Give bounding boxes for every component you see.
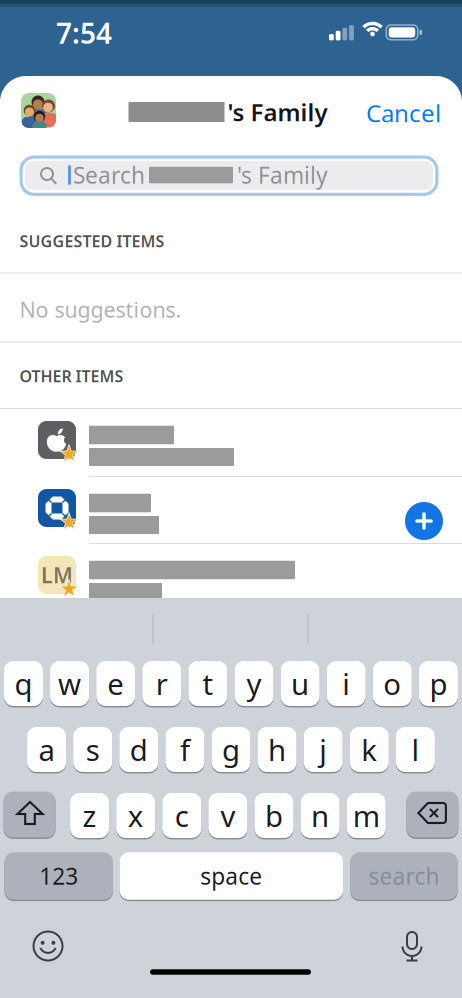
staticText: t: [202, 664, 213, 703]
staticText: i: [342, 664, 350, 703]
staticText: g: [222, 730, 240, 769]
button[interactable]: [0, 408, 462, 475]
button[interactable]: j: [304, 726, 343, 773]
button[interactable]: i: [327, 660, 366, 707]
staticText: 123: [39, 861, 78, 891]
button[interactable]: c: [162, 792, 201, 839]
button[interactable]: Add: [405, 502, 443, 540]
staticText: space: [200, 861, 262, 891]
button[interactable]: q: [4, 660, 43, 707]
button[interactable]: u: [281, 660, 320, 707]
staticText: s: [86, 730, 100, 769]
button[interactable]: Dictation: [396, 930, 428, 962]
button[interactable]: [0, 476, 462, 543]
button[interactable]: Delete: [406, 790, 458, 838]
button[interactable]: o: [373, 660, 412, 707]
button[interactable]: a: [27, 726, 66, 773]
button[interactable]: x: [116, 792, 155, 839]
staticText: p: [429, 664, 447, 703]
button[interactable]: s: [73, 726, 112, 773]
button[interactable]: f: [165, 726, 204, 773]
button[interactable]: y: [234, 660, 273, 707]
staticText: y: [246, 664, 261, 703]
staticText: n: [311, 796, 329, 835]
button[interactable]: v: [208, 792, 247, 839]
button[interactable]: z: [70, 792, 109, 839]
staticText: h: [268, 730, 286, 769]
button[interactable]: g: [211, 726, 250, 773]
staticText: 's Family: [237, 160, 328, 190]
staticText: OTHER ITEMS: [19, 365, 123, 387]
staticText: b: [265, 796, 283, 835]
button[interactable]: b: [254, 792, 293, 839]
staticText: c: [175, 796, 189, 835]
button[interactable]: d: [119, 726, 158, 773]
button[interactable]: LM: [0, 543, 462, 610]
staticText: d: [130, 730, 148, 769]
button[interactable]: Family: [21, 93, 56, 128]
button[interactable]: Emoji: [32, 930, 64, 962]
staticText: v: [220, 796, 235, 835]
button[interactable]: e: [96, 660, 135, 707]
button[interactable]: r: [142, 660, 181, 707]
button[interactable]: w: [50, 660, 89, 707]
staticText: Cancel: [366, 97, 441, 129]
button[interactable]: search: [350, 851, 458, 901]
staticText: LM: [41, 561, 73, 589]
button[interactable]: Shift: [4, 790, 56, 838]
button[interactable]: h: [258, 726, 297, 773]
staticText: SUGGESTED ITEMS: [19, 230, 164, 252]
staticText: search: [368, 861, 439, 891]
staticText: o: [383, 664, 401, 703]
staticText: Search: [73, 160, 145, 190]
button[interactable]: Search: [19, 154, 443, 198]
staticText: x: [128, 796, 144, 835]
button[interactable]: m: [347, 792, 386, 839]
button[interactable]: l: [396, 726, 435, 773]
staticText: l: [411, 730, 419, 769]
staticText: z: [83, 796, 97, 835]
staticText: f: [180, 730, 190, 769]
button[interactable]: n: [301, 792, 340, 839]
staticText: w: [58, 664, 81, 703]
staticText: m: [353, 796, 380, 835]
staticText: No suggestions.: [19, 295, 181, 324]
staticText: q: [14, 664, 32, 703]
button[interactable]: 123: [4, 851, 113, 901]
button[interactable]: t: [188, 660, 227, 707]
button[interactable]: space: [120, 851, 343, 901]
staticText: r: [156, 664, 168, 703]
staticText: u: [291, 664, 309, 703]
button[interactable]: k: [350, 726, 389, 773]
staticText: a: [39, 730, 55, 769]
button[interactable]: Cancel: [0, 97, 462, 129]
button[interactable]: p: [419, 660, 458, 707]
staticText: k: [361, 730, 377, 769]
staticText: j: [319, 730, 327, 769]
staticText: e: [107, 664, 124, 703]
staticText: 7:54: [56, 14, 112, 52]
staticText: 's Family: [227, 96, 327, 128]
